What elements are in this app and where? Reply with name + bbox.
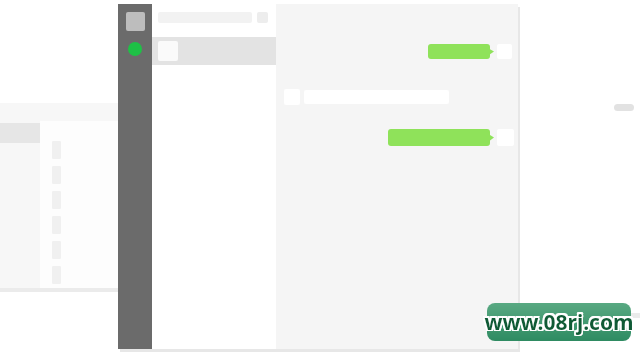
button[interactable]: Chats	[128, 42, 142, 56]
button[interactable]	[428, 44, 512, 59]
button[interactable]	[528, 92, 640, 316]
button[interactable]	[152, 37, 276, 65]
button[interactable]	[388, 129, 512, 146]
button[interactable]	[0, 103, 132, 290]
button[interactable]: Profile avatar	[126, 12, 145, 31]
